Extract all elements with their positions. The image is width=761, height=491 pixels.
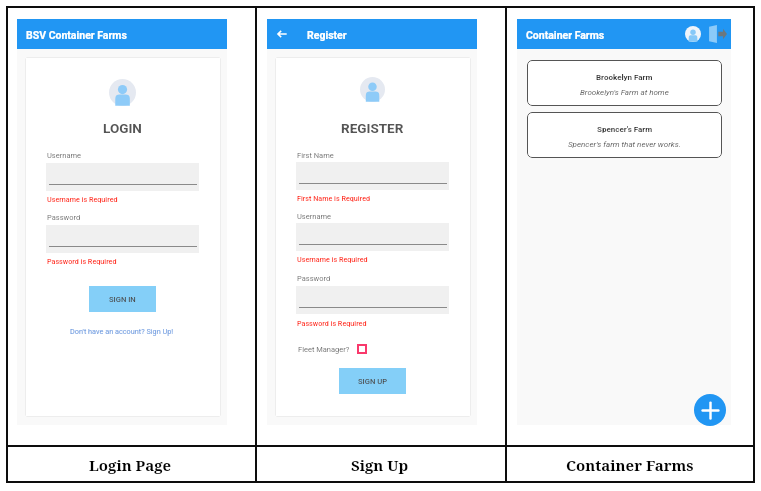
staticText: Password is Required — [47, 257, 117, 265]
staticText: REGISTER — [341, 120, 404, 136]
button[interactable]: Brookelyn Farm — [527, 60, 722, 106]
staticText: LOGIN — [103, 120, 142, 136]
staticText: BSV Container Farms — [26, 29, 127, 41]
staticText: Password — [47, 213, 81, 222]
staticText: Brookelyn Farm — [596, 73, 653, 82]
staticText: First Name — [297, 151, 334, 160]
button[interactable]: Account — [683, 24, 703, 44]
button[interactable]: Fleet Manager? — [298, 339, 367, 359]
staticText: Password — [297, 274, 331, 283]
staticText: First Name is Required — [297, 194, 371, 202]
staticText: Login Page — [89, 455, 172, 475]
staticText: Username is Required — [47, 195, 118, 203]
button[interactable]: Don't have an account? Sign Up! — [70, 327, 174, 336]
staticText: Username is Required — [297, 255, 368, 263]
staticText: Brookelyn's Farm at home — [580, 88, 669, 97]
staticText: Spencer's farm that never works. — [568, 140, 681, 149]
staticText: Spencer's Farm — [597, 125, 653, 134]
button[interactable]: Log out — [708, 24, 728, 44]
staticText: SIGN UP — [358, 377, 388, 386]
staticText: Sign Up — [351, 455, 409, 475]
staticText: Container Farms — [526, 29, 605, 41]
button[interactable]: Back — [273, 25, 291, 43]
button[interactable]: Add container farm — [694, 394, 726, 426]
staticText: Username — [297, 212, 332, 221]
staticText: Register — [307, 29, 347, 41]
staticText: Password is Required — [297, 319, 367, 327]
button[interactable]: SIGN UP — [339, 368, 406, 394]
staticText: Fleet Manager? — [298, 345, 350, 354]
button[interactable]: Spencer's Farm — [527, 112, 722, 158]
staticText: Container Farms — [566, 455, 694, 475]
staticText: SIGN IN — [109, 295, 136, 304]
staticText: Username — [47, 151, 82, 160]
button[interactable]: SIGN IN — [89, 286, 156, 312]
